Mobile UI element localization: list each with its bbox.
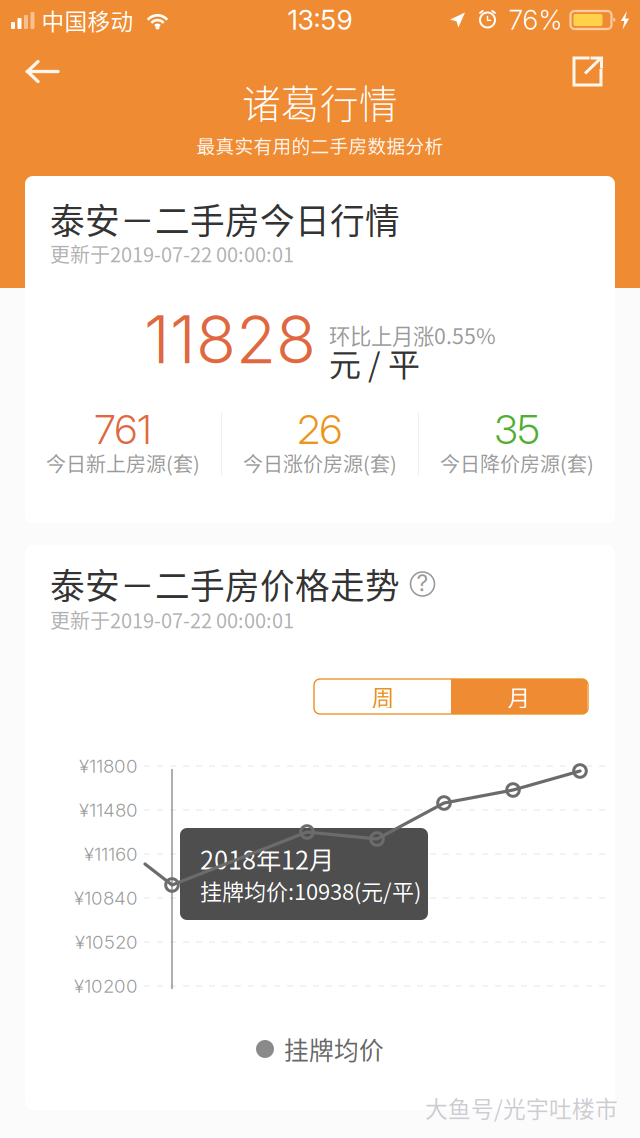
staticText: 13:59 bbox=[287, 4, 352, 36]
staticText: 泰安－二手房今日行情 bbox=[50, 194, 400, 244]
staticText: ¥11160 bbox=[84, 843, 138, 865]
staticText: 元 / 平 bbox=[329, 339, 420, 386]
staticText: 761 bbox=[94, 405, 151, 454]
staticText: 今日降价房源(套) bbox=[440, 448, 594, 477]
staticText: ¥11800 bbox=[79, 755, 138, 777]
staticText: 26 bbox=[297, 405, 342, 454]
button[interactable]: Share bbox=[563, 46, 612, 97]
staticText: 2018年12月 bbox=[200, 840, 334, 877]
staticText: ¥10200 bbox=[74, 975, 138, 997]
staticText: ? bbox=[416, 569, 428, 597]
staticText: ¥11480 bbox=[79, 799, 138, 821]
staticText: 周 bbox=[371, 680, 394, 713]
staticText: ¥10520 bbox=[75, 931, 138, 953]
button[interactable]: Back bbox=[13, 46, 72, 96]
staticText: 35 bbox=[494, 405, 539, 454]
staticText: 泰安－二手房价格走势 bbox=[50, 559, 400, 609]
staticText: 挂牌均价:10938(元/平) bbox=[200, 875, 421, 906]
staticText: ¥10840 bbox=[74, 887, 138, 909]
button[interactable]: 月 bbox=[451, 679, 587, 714]
button[interactable]: 说明 bbox=[410, 571, 435, 596]
staticText: 诸葛行情 bbox=[242, 73, 398, 129]
staticText: 今日涨价房源(套) bbox=[243, 448, 397, 477]
staticText: 更新于2019-07-22 00:00:01 bbox=[50, 605, 294, 634]
staticText: 环比上月涨0.55% bbox=[329, 320, 496, 350]
staticText: 今日新上房源(套) bbox=[46, 448, 200, 477]
staticText: 11828 bbox=[144, 300, 316, 379]
staticText: 中国移动 bbox=[41, 4, 133, 36]
button[interactable]: 周 bbox=[315, 679, 451, 714]
staticText: 月 bbox=[507, 680, 530, 713]
staticText: 大鱼号/光宇吐楼市 bbox=[425, 1091, 618, 1124]
staticText: 挂牌均价 bbox=[284, 1031, 384, 1067]
staticText: 76% bbox=[508, 4, 562, 36]
staticText: 更新于2019-07-22 00:00:01 bbox=[50, 239, 294, 268]
staticText: 最真实有用的二手房数据分析 bbox=[196, 131, 443, 158]
